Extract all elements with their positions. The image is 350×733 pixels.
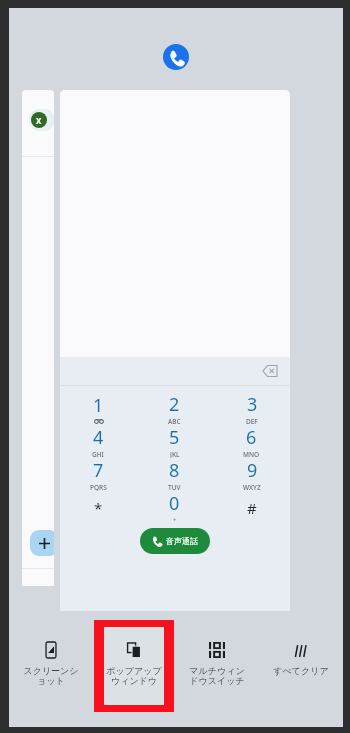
staticText: 3 — [247, 392, 258, 417]
button[interactable]: 9 — [213, 458, 290, 491]
staticText: GHI — [92, 450, 104, 458]
button[interactable]: 8 — [136, 458, 213, 491]
button[interactable]: 3 — [213, 392, 290, 425]
button[interactable]: Backspace — [258, 359, 282, 383]
button[interactable]: 2 — [136, 392, 213, 425]
staticText: * — [94, 498, 103, 518]
staticText: 1 — [93, 393, 104, 418]
button[interactable]: 6 — [213, 425, 290, 458]
button[interactable]: * — [60, 491, 136, 524]
staticText: 4 — [93, 425, 104, 450]
staticText: TUV — [168, 483, 181, 491]
staticText: 5 — [169, 425, 180, 450]
staticText: PQRS — [90, 483, 107, 491]
staticText: # — [247, 498, 257, 518]
button[interactable]: 1 — [60, 392, 136, 425]
staticText: X — [36, 115, 42, 126]
button[interactable]: # — [213, 491, 290, 524]
button[interactable]: Clear all — [259, 641, 343, 676]
staticText: WXYZ — [243, 483, 261, 491]
other: Clear all — [294, 643, 308, 657]
other: Screenshot — [43, 642, 59, 658]
staticText: 音声通話 — [166, 536, 198, 546]
staticText: 8 — [169, 458, 180, 483]
staticText: DEF — [246, 417, 258, 425]
staticText: 0 — [169, 491, 180, 516]
button[interactable]: Phone app — [163, 44, 189, 70]
staticText: スクリーンシ ョット — [23, 665, 79, 687]
button[interactable]: Screenshot — [9, 641, 92, 687]
staticText: 7 — [93, 458, 104, 483]
other: Popup window — [126, 642, 142, 658]
button[interactable]: 4 — [60, 425, 136, 458]
staticText: ポップアップ ウィンドウ — [106, 665, 162, 687]
button[interactable]: Multi window switch — [175, 641, 259, 687]
button[interactable]: X — [22, 90, 54, 586]
staticText: 2 — [169, 392, 180, 417]
button[interactable]: Popup window — [92, 641, 175, 687]
staticText: MNO — [243, 450, 260, 458]
staticText: ABC — [168, 417, 181, 425]
other: Multi window switch — [209, 642, 225, 658]
button[interactable]: 0 — [136, 491, 213, 524]
button[interactable]: 7 — [60, 458, 136, 491]
button[interactable]: 5 — [136, 425, 213, 458]
button[interactable]: 音声通話 — [140, 528, 210, 554]
staticText: すべてクリア — [273, 665, 329, 676]
staticText: + — [173, 516, 177, 524]
staticText: 6 — [246, 425, 257, 450]
staticText: 9 — [247, 458, 258, 483]
button[interactable]: New contact — [30, 530, 54, 556]
staticText: マルチウィン ドウスイッチ — [189, 665, 245, 687]
staticText: JKL — [170, 450, 180, 458]
